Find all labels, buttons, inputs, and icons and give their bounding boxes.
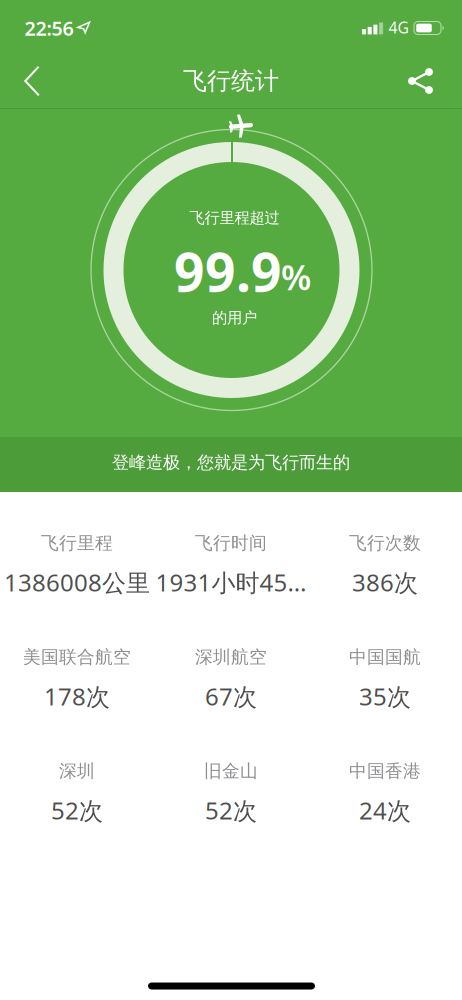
staticText: 的用户: [212, 308, 257, 328]
staticText: 4G: [388, 17, 408, 38]
staticText: 24次: [359, 794, 411, 826]
staticText: 1386008公里: [4, 566, 150, 598]
staticText: 登峰造极，您就是为飞行而生的: [112, 452, 350, 473]
staticText: 飞行统计: [183, 66, 279, 96]
staticText: 22:56: [24, 15, 73, 41]
staticText: 飞行里程超过: [189, 208, 279, 228]
staticText: 178次: [44, 680, 110, 712]
staticText: 飞行时间: [195, 532, 267, 554]
staticText: 飞行次数: [349, 532, 421, 554]
staticText: 67次: [205, 680, 257, 712]
button[interactable]: Back: [10, 54, 54, 108]
staticText: 飞行里程: [41, 532, 113, 554]
staticText: 中国香港: [349, 760, 421, 782]
staticText: 深圳: [59, 760, 95, 782]
staticText: 99.9: [174, 236, 282, 306]
staticText: 深圳航空: [195, 646, 267, 668]
staticText: 美国联合航空: [23, 646, 131, 668]
staticText: 旧金山: [204, 760, 258, 782]
staticText: 52次: [51, 794, 103, 826]
staticText: 35次: [359, 680, 411, 712]
staticText: 386次: [352, 566, 418, 598]
staticText: 1931小时45…: [155, 566, 306, 598]
button[interactable]: Share: [399, 54, 443, 108]
staticText: 中国国航: [349, 646, 421, 668]
staticText: %: [281, 254, 311, 300]
staticText: 52次: [205, 794, 257, 826]
